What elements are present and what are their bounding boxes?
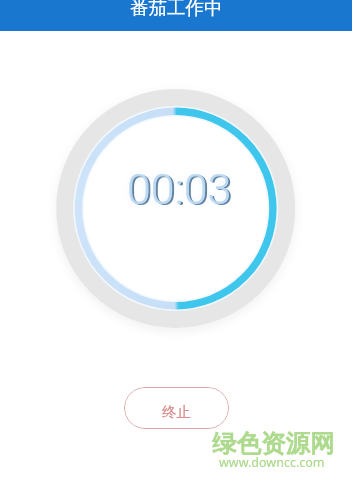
button[interactable]: 终止 bbox=[124, 387, 229, 429]
staticText: 00:03 bbox=[129, 165, 234, 215]
staticText: 番茄工作中 bbox=[130, 0, 223, 19]
staticText: 终止 bbox=[162, 403, 191, 421]
staticText: 绿色资源网 bbox=[212, 428, 335, 459]
staticText: www.downcc.com bbox=[219, 454, 325, 471]
staticText: 00:03 bbox=[127, 164, 232, 214]
